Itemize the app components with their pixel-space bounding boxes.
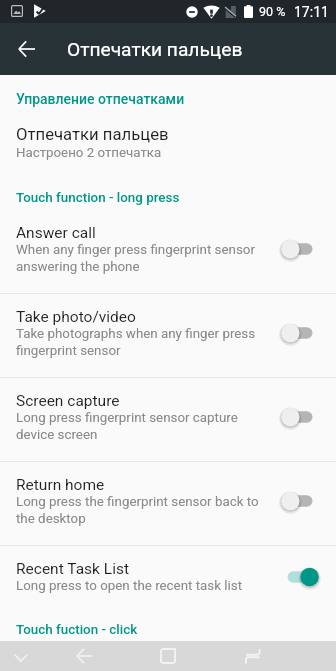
- button[interactable]: Recent Task List: [0, 546, 336, 613]
- staticText: Управление отпечатками: [16, 91, 185, 107]
- button[interactable]: Recent apps: [232, 641, 272, 671]
- staticText: Screen capture: [16, 392, 120, 410]
- button[interactable]: Turn off: [281, 564, 319, 590]
- staticText: Take photographs when any finger press f…: [16, 326, 262, 358]
- staticText: When any finger press fingerprint sensor…: [16, 242, 262, 274]
- staticText: Take photo/video: [16, 308, 136, 326]
- staticText: 90 %: [259, 4, 286, 19]
- button[interactable]: Take photo/video: [0, 294, 336, 377]
- button[interactable]: Answer call: [0, 212, 336, 293]
- staticText: Настроено 2 отпечатка: [16, 145, 262, 161]
- staticText: Touch fuction - click: [16, 622, 138, 638]
- button[interactable]: Return home: [0, 462, 336, 545]
- staticText: Long press to open the recent task list: [16, 578, 262, 594]
- staticText: Recent Task List: [16, 560, 129, 578]
- staticText: 17:11: [294, 4, 329, 20]
- staticText: Отпечатки пальцев: [67, 38, 243, 61]
- staticText: Long press fingerprint sensor capture de…: [16, 410, 262, 442]
- button[interactable]: Home: [148, 641, 188, 671]
- button[interactable]: Turn on: [281, 488, 319, 514]
- button[interactable]: Back: [64, 641, 104, 671]
- button[interactable]: Отпечатки пальцев: [0, 113, 336, 177]
- staticText: Long press the fingerprint sensor back t…: [16, 494, 262, 526]
- staticText: Return home: [16, 476, 105, 494]
- button[interactable]: Turn on: [281, 320, 319, 346]
- button[interactable]: Back: [0, 23, 52, 75]
- staticText: Touch function - long press: [16, 190, 180, 206]
- staticText: Отпечатки пальцев: [16, 125, 169, 145]
- staticText: Answer call: [16, 224, 96, 242]
- button[interactable]: Turn on: [281, 404, 319, 430]
- button[interactable]: Hide: [1, 641, 41, 671]
- button[interactable]: Turn on: [281, 236, 319, 262]
- button[interactable]: Screen capture: [0, 378, 336, 461]
